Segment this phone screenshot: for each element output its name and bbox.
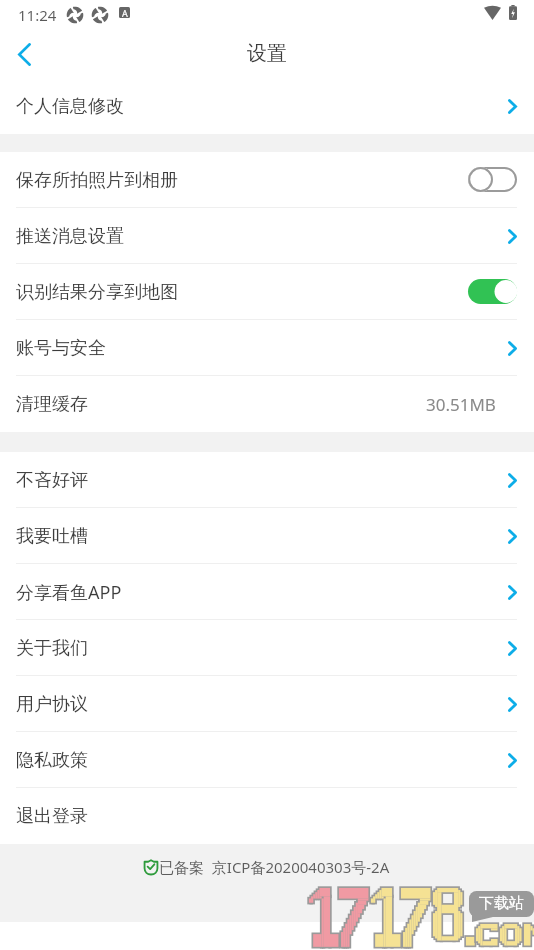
button[interactable]: 我要吐槽 bbox=[0, 508, 534, 564]
staticText: A bbox=[122, 7, 128, 18]
button[interactable]: 退出登录 bbox=[0, 788, 534, 844]
staticText: 保存所拍照片到相册 bbox=[16, 169, 178, 192]
staticText: 11:24 bbox=[18, 5, 57, 25]
staticText: 清理缓存 bbox=[16, 393, 88, 416]
staticText: 退出登录 bbox=[16, 805, 88, 828]
staticText: 30.51MB bbox=[426, 393, 496, 416]
staticText: 账号与安全 bbox=[16, 337, 106, 360]
button[interactable]: 关于我们 bbox=[0, 620, 534, 676]
staticText: 推送消息设置 bbox=[16, 225, 124, 248]
staticText: 关于我们 bbox=[16, 637, 88, 660]
button[interactable]: 不吝好评 bbox=[0, 452, 534, 508]
button[interactable]: 分享看鱼APP bbox=[0, 564, 534, 620]
button[interactable]: 推送消息设置 bbox=[0, 208, 534, 264]
button[interactable]: 保存所拍照片到相册 bbox=[0, 152, 534, 208]
staticText: 我要吐槽 bbox=[16, 525, 88, 548]
staticText: 用户协议 bbox=[16, 693, 88, 716]
button[interactable]: 清理缓存 bbox=[0, 376, 534, 432]
button[interactable]: 识别结果分享到地图 bbox=[0, 264, 534, 320]
staticText: 不吝好评 bbox=[16, 469, 88, 492]
button[interactable]: Back bbox=[0, 30, 48, 78]
staticText: 分享看鱼APP bbox=[16, 580, 122, 605]
staticText: 个人信息修改 bbox=[16, 95, 124, 118]
staticText: 识别结果分享到地图 bbox=[16, 281, 178, 304]
button[interactable]: 隐私政策 bbox=[0, 732, 534, 788]
button[interactable]: 用户协议 bbox=[0, 676, 534, 732]
staticText: 已备案 京ICP备2020040303号-2A bbox=[159, 857, 390, 877]
staticText: 设置 bbox=[247, 41, 287, 66]
staticText: 下载站 bbox=[479, 894, 524, 913]
button[interactable]: 账号与安全 bbox=[0, 320, 534, 376]
staticText: 隐私政策 bbox=[16, 749, 88, 772]
button[interactable]: 个人信息修改 bbox=[0, 78, 534, 134]
